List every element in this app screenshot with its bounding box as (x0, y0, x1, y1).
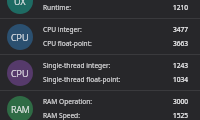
staticText: RAM Speed: (43, 111, 80, 120)
staticText: UX (14, 0, 26, 7)
staticText: CPU integer: (43, 25, 82, 34)
staticText: 1243 (173, 61, 189, 70)
staticText: CPU float-point: (43, 39, 92, 48)
staticText: RAM Operation: (43, 97, 93, 106)
staticText: 3663 (173, 39, 189, 48)
staticText: 1525 (173, 111, 189, 120)
staticText: RAM (11, 103, 30, 115)
staticText: Single-thread integer: (43, 61, 111, 70)
button[interactable]: RAM (0, 91, 200, 120)
staticText: Single-thread float-point: (43, 75, 121, 84)
button[interactable]: CPU (0, 19, 200, 55)
staticText: 3477 (173, 25, 189, 34)
staticText: Runtime: (43, 3, 71, 12)
staticText: 3000 (173, 97, 189, 106)
staticText: CPU (11, 67, 29, 79)
button[interactable]: UX (0, 0, 200, 19)
staticText: 1034 (173, 75, 189, 84)
staticText: 1210 (173, 3, 189, 12)
staticText: CPU (11, 31, 29, 43)
button[interactable]: CPU (0, 55, 200, 91)
